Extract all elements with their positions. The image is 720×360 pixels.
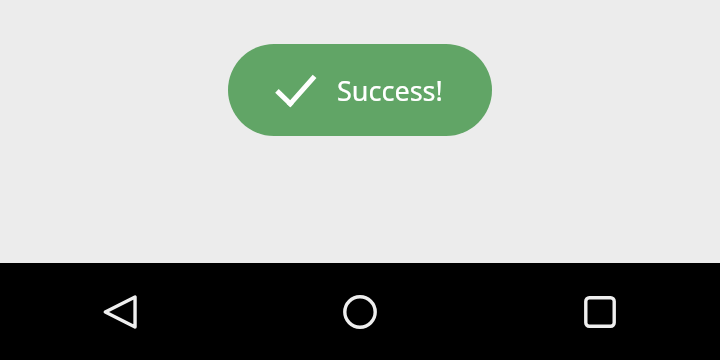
button[interactable]: Success! (228, 44, 492, 136)
button[interactable]: Home (240, 263, 480, 360)
button[interactable]: Recent apps (480, 263, 720, 360)
button[interactable]: Back (0, 263, 240, 360)
staticText: Success! (337, 72, 443, 109)
